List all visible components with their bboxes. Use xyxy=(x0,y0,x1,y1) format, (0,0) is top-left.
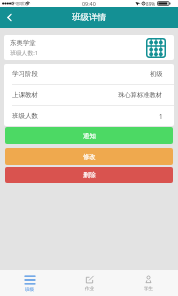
button[interactable]: 作业 xyxy=(60,270,119,296)
staticText: 学生 xyxy=(144,286,154,292)
button[interactable]: 班级 xyxy=(0,270,60,296)
staticText: 初级 xyxy=(150,70,163,78)
button[interactable]: Back xyxy=(0,8,19,27)
button[interactable]: 上课教材 xyxy=(4,84,174,105)
staticText: 中国联通 xyxy=(12,1,29,6)
staticText: 班级详情 xyxy=(72,12,106,23)
staticText: 通知 xyxy=(83,132,96,140)
staticText: 删除 xyxy=(83,171,96,179)
button[interactable]: 修改 xyxy=(5,148,173,165)
other: Abacus xyxy=(146,38,166,58)
button[interactable]: 学生 xyxy=(119,270,178,296)
button[interactable]: 班级人数 xyxy=(4,105,174,126)
staticText: 珠心算标准教材 xyxy=(118,91,163,99)
staticText: 班级人数 xyxy=(12,112,38,120)
button[interactable]: 学习阶段 xyxy=(4,64,174,84)
button[interactable]: 删除 xyxy=(5,167,173,183)
staticText: 1 xyxy=(159,112,163,121)
staticText: 班级 xyxy=(25,287,35,293)
staticText: 09:40 xyxy=(82,0,96,7)
staticText: 班级人数:1 xyxy=(10,49,39,57)
staticText: 修改 xyxy=(83,153,96,161)
button[interactable]: 东奥学堂 xyxy=(4,35,174,60)
staticText: 89% xyxy=(146,1,156,7)
staticText: 东奥学堂 xyxy=(10,39,36,47)
staticText: 作业 xyxy=(85,286,95,292)
staticText: 上课教材 xyxy=(12,91,38,99)
button[interactable]: 通知 xyxy=(5,127,173,144)
staticText: 学习阶段 xyxy=(12,70,38,78)
